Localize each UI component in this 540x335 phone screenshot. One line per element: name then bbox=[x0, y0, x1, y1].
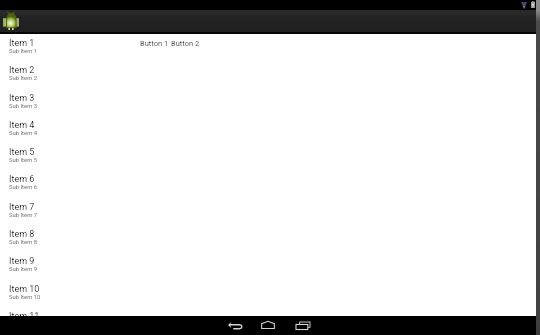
button[interactable]: Item 1 bbox=[0, 34, 130, 61]
staticText: Item 4 bbox=[9, 120, 35, 131]
staticText: Sub Item 1 bbox=[9, 48, 38, 55]
staticText: Item 7 bbox=[9, 202, 35, 213]
button[interactable]: Item 11 bbox=[0, 307, 130, 334]
staticText: Sub Item 6 bbox=[9, 184, 38, 191]
staticText: Sub Item 10 bbox=[9, 294, 41, 301]
button[interactable]: Item 9 bbox=[0, 252, 130, 279]
staticText: Item 10 bbox=[9, 284, 40, 295]
staticText: Item 3 bbox=[9, 93, 35, 104]
button[interactable]: Button 1 bbox=[140, 39, 169, 48]
button[interactable]: Button 2 bbox=[171, 39, 200, 48]
staticText: Sub Item 9 bbox=[9, 266, 38, 273]
staticText: Item 1 bbox=[9, 38, 35, 49]
button[interactable]: Back bbox=[221, 316, 249, 335]
staticText: Sub Item 3 bbox=[9, 103, 38, 110]
button[interactable]: Recent apps bbox=[288, 316, 316, 335]
button[interactable]: Item 7 bbox=[0, 198, 130, 225]
staticText: Sub Item 8 bbox=[9, 239, 38, 246]
staticText: Sub Item 4 bbox=[9, 130, 38, 137]
button[interactable]: Item 8 bbox=[0, 225, 130, 252]
staticText: Item 6 bbox=[9, 174, 35, 185]
button[interactable]: Item 2 bbox=[0, 61, 130, 88]
button[interactable]: Item 4 bbox=[0, 116, 130, 143]
staticText: Item 2 bbox=[9, 65, 35, 76]
staticText: Item 8 bbox=[9, 229, 35, 240]
button[interactable]: Item 6 bbox=[0, 170, 130, 197]
staticText: Sub Item 7 bbox=[9, 212, 38, 219]
staticText: Item 5 bbox=[9, 147, 35, 158]
button[interactable]: App icon bbox=[3, 12, 19, 30]
button[interactable]: Item 3 bbox=[0, 89, 130, 116]
button[interactable]: Home bbox=[254, 316, 282, 335]
button[interactable]: Item 10 bbox=[0, 280, 130, 307]
staticText: Sub Item 5 bbox=[9, 157, 38, 164]
button[interactable]: Item 5 bbox=[0, 143, 130, 170]
staticText: Item 11 bbox=[9, 311, 40, 322]
staticText: Sub Item 2 bbox=[9, 75, 38, 82]
staticText: Item 9 bbox=[9, 256, 35, 267]
